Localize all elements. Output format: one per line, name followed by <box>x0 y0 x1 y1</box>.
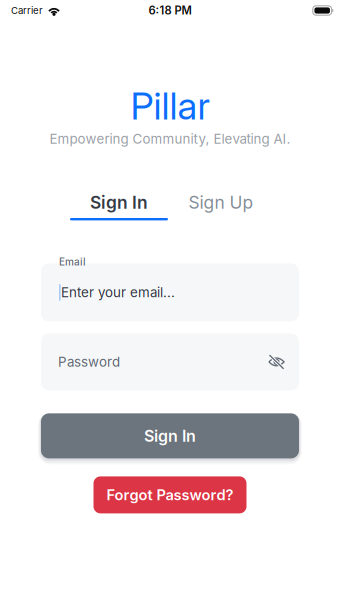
staticText: Pillar <box>130 83 209 129</box>
button[interactable]: Show password <box>264 350 289 374</box>
staticText: 6:18 PM <box>148 4 191 17</box>
button[interactable]: Forgot Password? <box>93 476 246 513</box>
staticText: Password <box>58 354 120 370</box>
button[interactable]: Sign Up <box>170 196 272 220</box>
button[interactable]: Sign In <box>68 196 170 220</box>
staticText: Sign Up <box>188 192 253 213</box>
staticText: Email <box>59 256 86 268</box>
staticText: Forgot Password? <box>106 486 233 504</box>
staticText: Carrier <box>11 5 43 16</box>
staticText: Enter your email... <box>61 284 175 300</box>
staticText: Sign In <box>90 192 148 213</box>
button[interactable]: Sign In <box>41 413 299 458</box>
staticText: Sign In <box>144 426 196 446</box>
staticText: Empowering Community, Elevating AI. <box>49 131 290 147</box>
